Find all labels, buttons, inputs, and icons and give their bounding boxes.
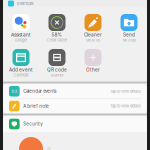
staticText: A brief note [23, 103, 49, 109]
staticText: Assistant [11, 32, 31, 38]
button[interactable]: A brief note [3, 99, 147, 113]
staticText: Security [86, 38, 100, 43]
staticText: Shortcuts [16, 1, 33, 6]
staticText: Send [123, 32, 135, 38]
button[interactable]: Assistant [3, 14, 39, 49]
staticText: Tap to view details [110, 104, 141, 108]
button[interactable]: Send [111, 14, 147, 49]
button[interactable]: Other [75, 49, 111, 84]
button[interactable]: Cleaner [75, 14, 111, 49]
staticText: Calendar [13, 73, 28, 78]
staticText: Google [15, 38, 27, 43]
staticText: Calendar events [23, 89, 56, 94]
staticText: Other [86, 67, 100, 73]
button[interactable]: 03 [3, 84, 147, 98]
staticText: Clear cache [47, 38, 67, 43]
staticText: 58% [51, 32, 62, 38]
staticText: Add event [9, 67, 33, 73]
staticText: 03 [12, 89, 17, 94]
staticText: Tap to view details [110, 89, 141, 94]
staticText: Sc [47, 147, 51, 150]
staticText: Security [23, 121, 42, 127]
button[interactable]: QR code [39, 49, 75, 84]
button[interactable]: Add event [3, 49, 39, 84]
staticText: Cleaner [84, 32, 102, 38]
staticText: QR code [47, 67, 67, 73]
staticText: Scanner [50, 73, 63, 78]
button[interactable]: 58% [39, 14, 75, 49]
staticText: Mi Drop [122, 38, 135, 43]
